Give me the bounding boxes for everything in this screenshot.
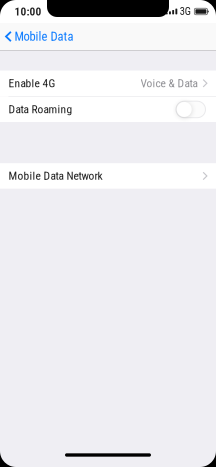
staticText: Voice & Data — [141, 76, 198, 90]
button[interactable]: Data Roaming — [176, 101, 205, 118]
button[interactable]: Mobile Data Network — [0, 163, 216, 189]
button[interactable]: Enable 4G — [0, 70, 216, 96]
staticText: Data Roaming — [8, 103, 72, 116]
staticText: Mobile Data Network — [8, 169, 102, 183]
staticText: Mobile Data — [14, 29, 73, 44]
staticText: 10:00 — [14, 5, 41, 18]
button[interactable]: Mobile Data — [0, 23, 83, 50]
staticText: 3G — [180, 5, 191, 18]
staticText: Enable 4G — [8, 76, 55, 90]
